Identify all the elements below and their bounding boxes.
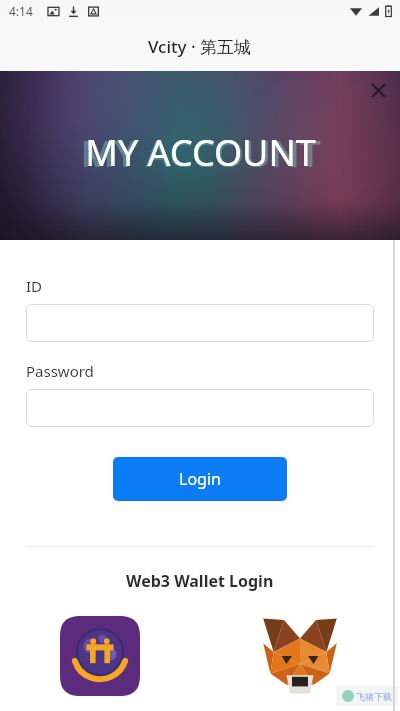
staticText: MY ACCOUNT — [80, 127, 321, 177]
button[interactable]: Pi Browser — [52, 614, 148, 711]
staticText: Password — [26, 361, 94, 381]
staticText: MY ACCOUNT — [85, 128, 316, 177]
staticText: Web3 Wallet Login — [126, 570, 274, 592]
button[interactable]: Text input — [26, 389, 374, 427]
staticText: Vcity · 第五城 — [148, 35, 252, 58]
button[interactable]: Metamask — [252, 614, 348, 711]
staticText: ID — [26, 276, 43, 296]
staticText: Login — [179, 468, 221, 490]
button[interactable]: Close — [365, 77, 391, 103]
staticText: 飞猪下载 — [356, 691, 392, 702]
staticText: 4:14 — [9, 3, 33, 19]
button[interactable]: Login — [113, 457, 287, 501]
button[interactable]: Text input — [26, 304, 374, 342]
